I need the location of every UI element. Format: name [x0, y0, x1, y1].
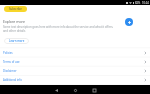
button[interactable]: Back [52, 86, 60, 94]
staticText: 10:24 [142, 1, 149, 5]
staticText: Policies [3, 51, 13, 55]
button[interactable]: Additional info [0, 75, 150, 84]
staticText: Subscribe [9, 7, 22, 11]
button[interactable]: Recents [90, 86, 98, 94]
button[interactable]: Home [71, 86, 79, 94]
button[interactable]: Terms of use [0, 57, 150, 66]
button[interactable]: Disclaimer [0, 66, 150, 75]
staticText: Some text description goes here with mor… [3, 25, 121, 33]
staticText: Terms of use [3, 60, 20, 64]
staticText: Disclaimer [3, 69, 17, 73]
staticText: Additional info [3, 78, 22, 82]
button[interactable]: Policies [0, 48, 150, 57]
button[interactable]: Subscribe [4, 6, 27, 12]
staticText: Explore more [3, 19, 25, 24]
button[interactable]: Add [125, 18, 133, 26]
button[interactable]: Learn more [4, 38, 29, 44]
staticText: 82% [135, 1, 141, 5]
staticText: Learn more [9, 39, 25, 43]
